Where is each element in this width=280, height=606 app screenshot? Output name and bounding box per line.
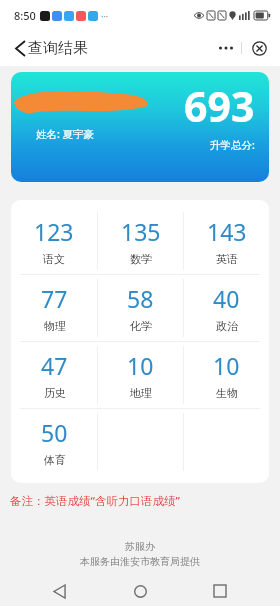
staticText: 升学总分: xyxy=(210,138,255,152)
staticText: 693 xyxy=(184,78,255,134)
button[interactable]: 123 xyxy=(11,208,97,274)
button[interactable]: 135 xyxy=(98,208,183,274)
button[interactable]: 143 xyxy=(184,208,269,274)
button[interactable]: Recent apps xyxy=(200,576,240,606)
staticText: 143 xyxy=(207,216,247,247)
button[interactable]: Back xyxy=(40,576,80,606)
staticText: 体育 xyxy=(44,453,66,467)
button[interactable]: 50 xyxy=(11,409,97,475)
staticText: 10 xyxy=(213,350,240,381)
button[interactable]: 10 xyxy=(98,342,183,408)
staticText: 政治 xyxy=(216,319,238,333)
staticText: 10 xyxy=(127,350,154,381)
staticText: 姓名: 夏宇豪 xyxy=(36,127,95,141)
staticText: 40 xyxy=(213,283,240,314)
staticText: 物理 xyxy=(44,319,66,333)
staticText: 135 xyxy=(121,216,161,247)
staticText: 英语 xyxy=(216,252,238,266)
button[interactable]: 77 xyxy=(11,275,97,341)
button[interactable]: 40 xyxy=(184,275,269,341)
staticText: 58 xyxy=(127,283,154,314)
staticText: 生物 xyxy=(216,386,238,400)
staticText: 语文 xyxy=(43,252,65,266)
staticText: 47 xyxy=(41,350,68,381)
staticText: 苏服办 xyxy=(125,540,155,553)
staticText: 查询结果 xyxy=(28,39,88,58)
button[interactable]: Close xyxy=(248,37,270,59)
staticText: ··· xyxy=(101,10,109,22)
staticText: 77 xyxy=(41,283,68,314)
staticText: 备注：英语成绩“含听力口语成绩” xyxy=(10,493,180,509)
button[interactable]: Home xyxy=(120,576,160,606)
button[interactable]: More options xyxy=(215,37,237,59)
staticText: 地理 xyxy=(130,386,152,400)
staticText: 123 xyxy=(34,216,74,247)
staticText: 数学 xyxy=(130,252,152,266)
button[interactable]: 姓名: 夏宇豪 xyxy=(11,72,269,182)
button[interactable]: 58 xyxy=(98,275,183,341)
staticText: 本服务由淮安市教育局提供 xyxy=(80,555,200,568)
button[interactable]: 47 xyxy=(11,342,97,408)
button[interactable]: Back xyxy=(6,34,34,62)
staticText: 50 xyxy=(41,417,68,448)
staticText: 化学 xyxy=(130,319,152,333)
staticText: 历史 xyxy=(44,386,66,400)
button[interactable]: 10 xyxy=(184,342,269,408)
staticText: 8:50 xyxy=(14,8,36,23)
